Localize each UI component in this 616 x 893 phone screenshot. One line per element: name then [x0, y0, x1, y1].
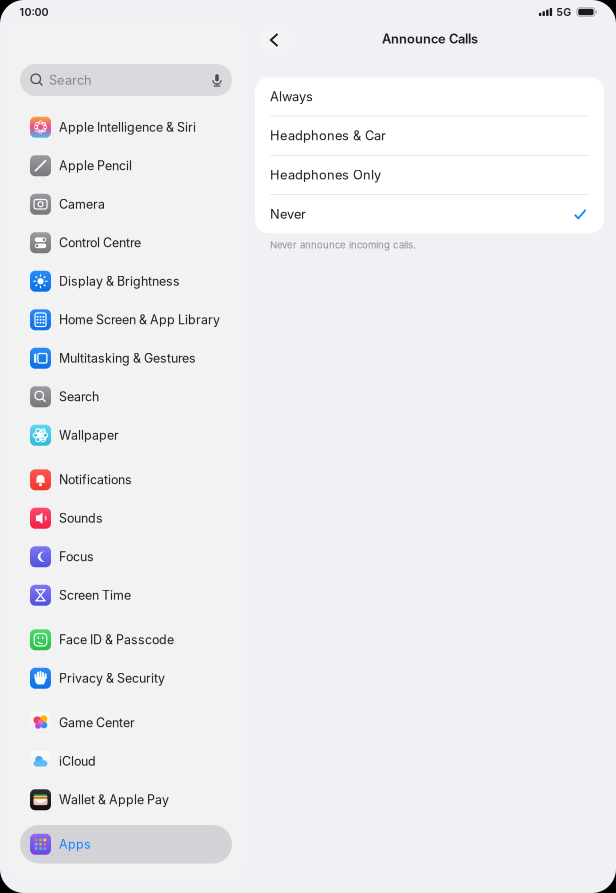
- staticText: Multitasking & Gestures: [59, 351, 196, 366]
- button[interactable]: Headphones Only: [255, 156, 604, 194]
- button[interactable]: Home Screen & App Library: [20, 300, 232, 339]
- staticText: Apps: [59, 837, 91, 852]
- staticText: Notifications: [59, 472, 132, 487]
- staticText: Camera: [59, 197, 105, 212]
- button[interactable]: Camera: [20, 185, 232, 223]
- staticText: Announce Calls: [382, 31, 478, 46]
- button[interactable]: Game Center: [20, 703, 232, 742]
- button[interactable]: Privacy & Security: [20, 659, 232, 697]
- staticText: Never: [270, 206, 306, 222]
- button[interactable]: Headphones & Car: [255, 116, 604, 155]
- staticText: Search: [49, 72, 92, 88]
- button[interactable]: Display & Brightness: [20, 262, 232, 300]
- button[interactable]: Focus: [20, 537, 232, 576]
- staticText: Screen Time: [59, 588, 131, 603]
- button[interactable]: Screen Time: [20, 576, 232, 614]
- staticText: Search: [59, 389, 99, 404]
- button[interactable]: Apple Pencil: [20, 146, 232, 185]
- staticText: Always: [270, 89, 313, 104]
- button[interactable]: Search: [20, 377, 232, 416]
- staticText: Sounds: [59, 511, 103, 526]
- button[interactable]: Always: [255, 77, 604, 116]
- button[interactable]: Back: [259, 24, 291, 56]
- staticText: Apple Intelligence & Siri: [59, 120, 196, 135]
- staticText: iCloud: [59, 754, 96, 769]
- staticText: Home Screen & App Library: [59, 312, 220, 327]
- staticText: Headphones & Car: [270, 128, 386, 143]
- staticText: Never announce incoming calls.: [270, 239, 416, 251]
- staticText: 10:00: [19, 5, 48, 18]
- staticText: Focus: [59, 549, 94, 564]
- button[interactable]: Wallpaper: [20, 416, 232, 454]
- button[interactable]: iCloud: [20, 742, 232, 780]
- staticText: Privacy & Security: [59, 671, 165, 686]
- button[interactable]: Wallet & Apple Pay: [20, 780, 232, 819]
- staticText: Wallet & Apple Pay: [59, 792, 169, 807]
- button[interactable]: Sounds: [20, 499, 232, 537]
- button[interactable]: Face ID & Passcode: [20, 620, 232, 659]
- button[interactable]: Control Centre: [20, 223, 232, 262]
- button[interactable]: Multitasking & Gestures: [20, 339, 232, 377]
- button[interactable]: Notifications: [20, 460, 232, 499]
- staticText: Wallpaper: [59, 428, 119, 443]
- staticText: Apple Pencil: [59, 158, 132, 173]
- staticText: Control Centre: [59, 235, 141, 250]
- button[interactable]: Never: [255, 195, 604, 233]
- staticText: 5G: [556, 5, 571, 18]
- button[interactable]: Apple Intelligence & Siri: [20, 108, 232, 146]
- staticText: Game Center: [59, 715, 135, 730]
- staticText: Display & Brightness: [59, 274, 180, 289]
- staticText: Face ID & Passcode: [59, 632, 174, 647]
- staticText: Headphones Only: [270, 167, 381, 183]
- button[interactable]: Apps: [20, 825, 232, 863]
